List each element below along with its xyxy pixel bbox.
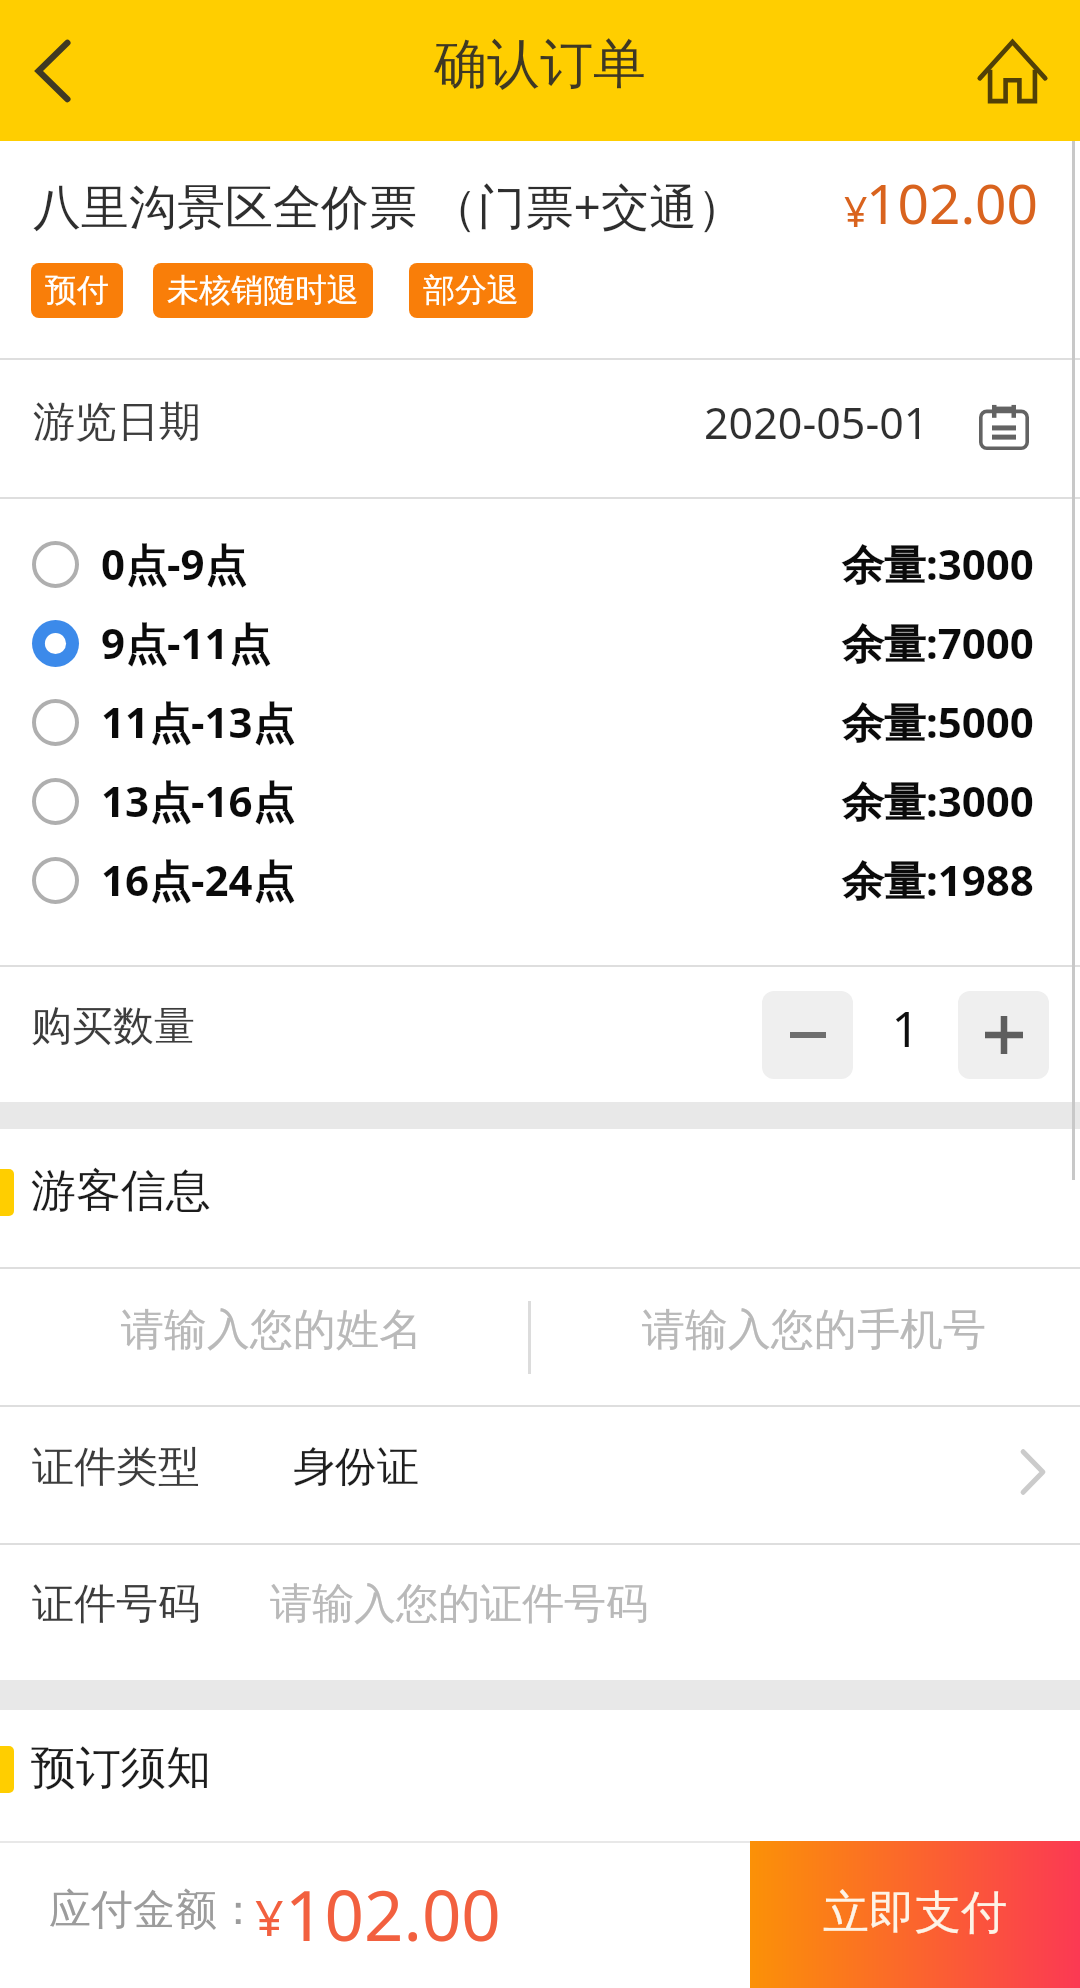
staticText: 请输入您的手机号 bbox=[642, 1303, 986, 1357]
staticText: 购买数量 bbox=[31, 1001, 195, 1053]
staticText: 预订须知 bbox=[31, 1740, 211, 1797]
button[interactable]: 16点-24点 bbox=[0, 841, 1080, 920]
button[interactable]: 游览日期 bbox=[0, 360, 1080, 497]
button[interactable]: 11点-13点 bbox=[0, 683, 1080, 762]
staticText: 请输入您的证件号码 bbox=[270, 1578, 648, 1631]
staticText: 身份证 bbox=[293, 1441, 419, 1494]
staticText: 13点-16点 bbox=[101, 772, 295, 829]
staticText: 102.00 bbox=[866, 165, 1039, 240]
button[interactable]: 0点-9点 bbox=[0, 525, 1080, 604]
staticText: 八里沟景区全价票 （门票+交通） bbox=[33, 173, 844, 239]
staticText: 确认订单 bbox=[434, 31, 646, 98]
button[interactable]: Home bbox=[945, 0, 1080, 141]
staticText: 1 bbox=[891, 995, 920, 1062]
staticText: 余量:3000 bbox=[842, 535, 1034, 592]
button[interactable]: 请输入您的手机号 bbox=[531, 1269, 1080, 1405]
staticText: 证件号码 bbox=[32, 1578, 200, 1631]
staticText: 未核销随时退 bbox=[167, 270, 359, 310]
staticText: 余量:5000 bbox=[842, 693, 1034, 750]
staticText: 余量:1988 bbox=[842, 851, 1034, 908]
staticText: 应付金额： bbox=[49, 1884, 259, 1937]
button[interactable]: 证件类型 bbox=[0, 1407, 1080, 1543]
staticText: 余量:3000 bbox=[842, 772, 1034, 829]
staticText: 游客信息 bbox=[31, 1163, 211, 1220]
staticText: 部分退 bbox=[423, 270, 519, 310]
staticText: 16点-24点 bbox=[101, 851, 295, 908]
staticText: 2020-05-01 bbox=[704, 393, 929, 452]
button[interactable]: 9点-11点 bbox=[0, 604, 1080, 683]
staticText: 102.00 bbox=[285, 1867, 501, 1961]
staticText: 余量:7000 bbox=[842, 614, 1034, 671]
staticText: 请输入您的姓名 bbox=[121, 1303, 422, 1357]
button[interactable]: 13点-16点 bbox=[0, 762, 1080, 841]
staticText: 游览日期 bbox=[33, 396, 201, 449]
staticText: 9点-11点 bbox=[101, 614, 271, 671]
button[interactable]: Increase quantity bbox=[958, 991, 1049, 1079]
button[interactable]: 请输入您的姓名 bbox=[0, 1269, 528, 1405]
button[interactable]: Decrease quantity bbox=[762, 991, 853, 1079]
staticText: ¥ bbox=[255, 1883, 284, 1951]
staticText: 11点-13点 bbox=[101, 693, 295, 750]
staticText: 证件类型 bbox=[32, 1441, 200, 1494]
button[interactable]: 证件号码 bbox=[0, 1545, 1080, 1680]
staticText: ¥ bbox=[844, 183, 868, 239]
button[interactable]: 立即支付 bbox=[750, 1841, 1080, 1988]
staticText: 0点-9点 bbox=[101, 535, 247, 592]
staticText: 立即支付 bbox=[823, 1884, 1007, 1942]
staticText: 预付 bbox=[45, 270, 109, 310]
button[interactable]: Back bbox=[0, 0, 106, 141]
